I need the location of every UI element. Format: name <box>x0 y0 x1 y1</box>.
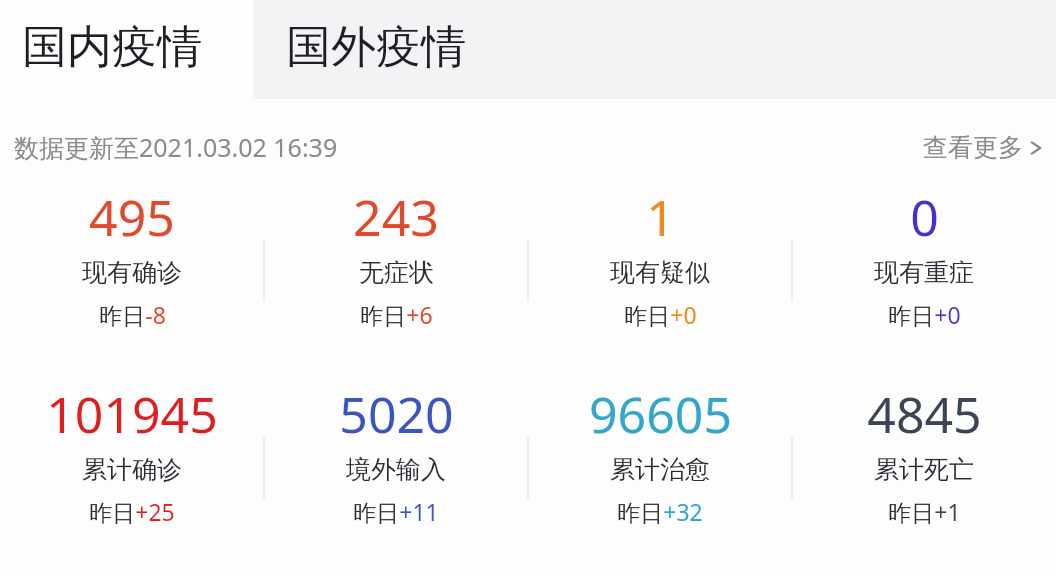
staticText: 96605 <box>589 380 732 448</box>
button[interactable]: 4845 <box>792 380 1056 527</box>
staticText: 累计治愈 <box>610 454 710 485</box>
staticText: 昨日+11 <box>353 496 439 527</box>
button[interactable]: 1 <box>528 183 792 330</box>
staticText: 昨日+25 <box>89 496 175 527</box>
staticText: 境外输入 <box>346 454 446 485</box>
staticText: 495 <box>89 183 175 251</box>
button[interactable]: 5020 <box>264 380 528 527</box>
staticText: 国外疫情 <box>286 19 466 76</box>
button[interactable]: 96605 <box>528 380 792 527</box>
staticText: 累计确诊 <box>82 454 182 485</box>
button[interactable]: 101945 <box>0 380 264 527</box>
staticText: 无症状 <box>359 257 434 288</box>
staticText: 昨日+0 <box>888 299 961 330</box>
other: View more <box>1030 138 1042 158</box>
staticText: 昨日+6 <box>360 299 433 330</box>
button[interactable]: 243 <box>264 183 528 330</box>
staticText: 数据更新至2021.03.02 16:39 <box>14 130 338 164</box>
staticText: 查看更多 <box>923 132 1023 163</box>
staticText: 0 <box>910 183 939 251</box>
staticText: 现有确诊 <box>82 257 182 288</box>
staticText: 国内疫情 <box>22 19 202 76</box>
button[interactable]: 0 <box>792 183 1056 330</box>
staticText: 4845 <box>867 380 982 448</box>
staticText: 累计死亡 <box>874 454 974 485</box>
button[interactable]: 国内疫情 <box>0 0 253 99</box>
staticText: 现有疑似 <box>610 257 710 288</box>
staticText: 101945 <box>46 380 218 448</box>
staticText: 昨日+32 <box>617 496 703 527</box>
button[interactable]: 495 <box>0 183 264 330</box>
staticText: 现有重症 <box>874 257 974 288</box>
staticText: 昨日-8 <box>99 299 166 330</box>
staticText: 243 <box>353 183 439 251</box>
staticText: 昨日+0 <box>624 299 697 330</box>
button[interactable]: 国外疫情 <box>253 0 1056 99</box>
staticText: 1 <box>646 183 675 251</box>
button[interactable]: 查看更多 <box>923 132 1056 163</box>
staticText: 昨日+1 <box>888 496 961 527</box>
staticText: 5020 <box>339 380 454 448</box>
